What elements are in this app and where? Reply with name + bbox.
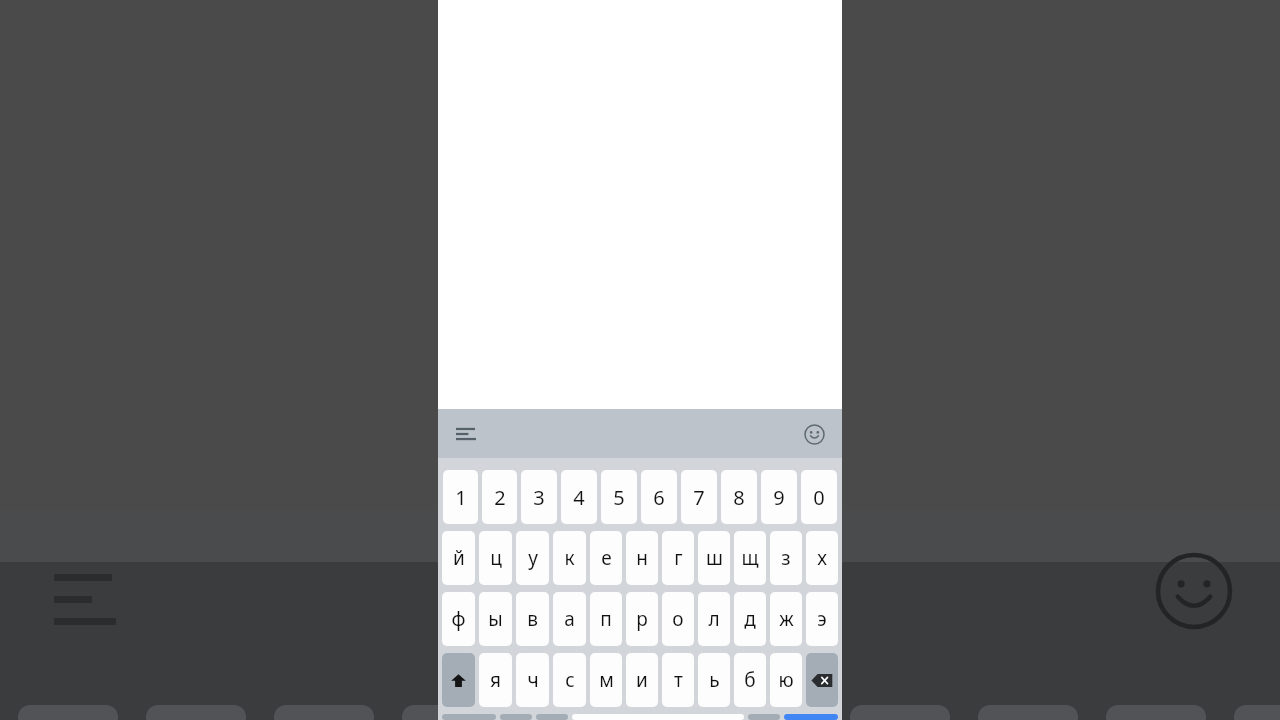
staticText: п bbox=[600, 606, 612, 632]
staticText: я bbox=[490, 667, 501, 693]
button[interactable]: к bbox=[553, 531, 586, 585]
staticText: 6 bbox=[653, 484, 665, 511]
staticText: с bbox=[565, 667, 575, 693]
button[interactable]: 5 bbox=[601, 470, 637, 524]
staticText: в bbox=[527, 606, 538, 632]
button[interactable]: ы bbox=[479, 592, 512, 646]
button[interactable]: ц bbox=[479, 531, 512, 585]
button[interactable]: б bbox=[734, 653, 766, 707]
button[interactable]: ю bbox=[770, 653, 802, 707]
staticText: к bbox=[564, 545, 575, 571]
button[interactable]: Key bbox=[536, 714, 568, 720]
staticText: ж bbox=[779, 606, 794, 632]
button[interactable]: л bbox=[698, 592, 730, 646]
staticText: а bbox=[564, 606, 575, 632]
staticText: д bbox=[744, 606, 756, 632]
button[interactable]: Backspace bbox=[806, 653, 838, 707]
button[interactable]: 9 bbox=[761, 470, 797, 524]
staticText: 7 bbox=[693, 484, 705, 511]
staticText: ч bbox=[527, 667, 539, 693]
staticText: з bbox=[781, 545, 791, 571]
button[interactable]: н bbox=[626, 531, 658, 585]
staticText: 5 bbox=[613, 484, 625, 511]
button[interactable]: Keyboard options bbox=[448, 416, 484, 452]
staticText: 8 bbox=[733, 484, 745, 511]
button[interactable]: д bbox=[734, 592, 766, 646]
staticText: б bbox=[744, 667, 756, 693]
button[interactable]: Key bbox=[442, 714, 496, 720]
staticText: 0 bbox=[813, 484, 825, 511]
staticText: е bbox=[601, 545, 612, 571]
button[interactable]: щ bbox=[734, 531, 766, 585]
staticText: р bbox=[636, 606, 648, 632]
staticText: ш bbox=[706, 545, 723, 571]
button[interactable]: п bbox=[590, 592, 622, 646]
staticText: л bbox=[708, 606, 720, 632]
button[interactable]: 2 bbox=[482, 470, 517, 524]
button[interactable]: 1 bbox=[443, 470, 478, 524]
button[interactable]: е bbox=[590, 531, 622, 585]
button[interactable]: Key bbox=[500, 714, 532, 720]
staticText: ы bbox=[488, 606, 503, 632]
button[interactable]: ь bbox=[698, 653, 730, 707]
staticText: ц bbox=[490, 545, 502, 571]
button[interactable]: у bbox=[516, 531, 549, 585]
button[interactable]: ш bbox=[698, 531, 730, 585]
staticText: м bbox=[599, 667, 614, 693]
staticText: н bbox=[636, 545, 648, 571]
button[interactable]: 8 bbox=[721, 470, 757, 524]
button[interactable]: я bbox=[479, 653, 512, 707]
staticText: 4 bbox=[573, 484, 585, 511]
staticText: 2 bbox=[494, 484, 506, 511]
button[interactable]: з bbox=[770, 531, 802, 585]
staticText: о bbox=[672, 606, 684, 632]
button[interactable]: 7 bbox=[681, 470, 717, 524]
staticText: 1 bbox=[455, 484, 467, 511]
button[interactable]: Emoji bbox=[796, 416, 832, 452]
button[interactable]: 6 bbox=[641, 470, 677, 524]
staticText: ю bbox=[778, 667, 794, 693]
button[interactable]: 0 bbox=[801, 470, 837, 524]
staticText: э bbox=[817, 606, 827, 632]
button[interactable]: а bbox=[553, 592, 586, 646]
staticText: 3 bbox=[533, 484, 545, 511]
button[interactable]: с bbox=[553, 653, 586, 707]
staticText: х bbox=[817, 545, 827, 571]
button[interactable]: ч bbox=[516, 653, 549, 707]
button[interactable]: э bbox=[806, 592, 838, 646]
staticText: т bbox=[674, 667, 683, 693]
staticText: 9 bbox=[773, 484, 785, 511]
staticText: и bbox=[636, 667, 648, 693]
staticText: у bbox=[528, 545, 538, 571]
button[interactable]: й bbox=[442, 531, 475, 585]
staticText: ф bbox=[451, 606, 466, 632]
staticText: й bbox=[453, 545, 465, 571]
staticText: щ bbox=[741, 545, 759, 571]
button[interactable]: ж bbox=[770, 592, 802, 646]
button[interactable]: 4 bbox=[561, 470, 597, 524]
button[interactable]: х bbox=[806, 531, 838, 585]
staticText: г bbox=[674, 545, 683, 571]
button[interactable]: и bbox=[626, 653, 658, 707]
button[interactable]: Key bbox=[748, 714, 780, 720]
button[interactable]: 3 bbox=[521, 470, 557, 524]
button[interactable]: р bbox=[626, 592, 658, 646]
button[interactable]: о bbox=[662, 592, 694, 646]
button[interactable]: г bbox=[662, 531, 694, 585]
button[interactable]: в bbox=[516, 592, 549, 646]
button[interactable]: ф bbox=[442, 592, 475, 646]
button[interactable]: Shift bbox=[442, 653, 475, 707]
button[interactable]: т bbox=[662, 653, 694, 707]
staticText: ь bbox=[709, 667, 720, 693]
button[interactable]: Enter bbox=[784, 714, 838, 720]
button[interactable]: м bbox=[590, 653, 622, 707]
